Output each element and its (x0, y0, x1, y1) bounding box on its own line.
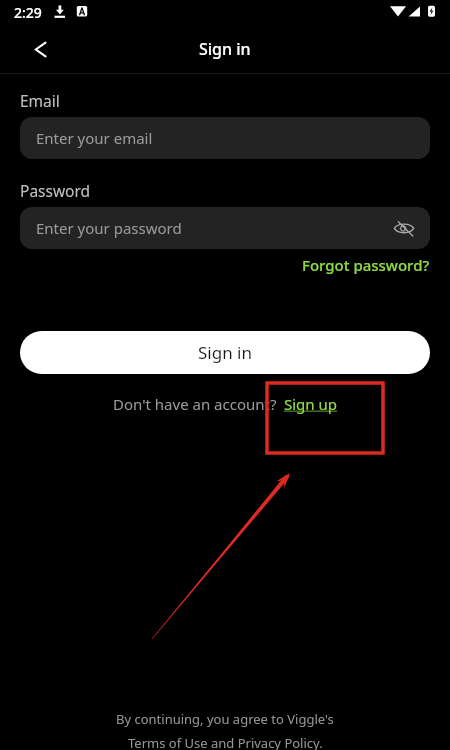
staticText: Email (20, 90, 60, 111)
button[interactable]: Show password (390, 214, 418, 242)
staticText: Enter your email (36, 128, 153, 148)
button[interactable]: Enter your password (20, 207, 430, 249)
staticText: Sign up (284, 394, 337, 414)
staticText: Password (20, 180, 91, 201)
staticText: Terms of Use and Privacy Policy. (128, 734, 323, 750)
button[interactable]: Sign up (284, 394, 337, 414)
staticText: Sign in (198, 341, 252, 364)
staticText: Sign in (199, 38, 251, 60)
button[interactable]: Enter your email (20, 117, 430, 159)
staticText: 2:29 (14, 3, 42, 22)
button[interactable]: Forgot password? (302, 255, 430, 275)
staticText: Forgot password? (302, 255, 430, 275)
staticText: Don't have an account? (113, 394, 277, 414)
staticText: Enter your password (36, 218, 182, 238)
button[interactable]: Back (24, 33, 56, 65)
button[interactable]: Sign in (20, 331, 430, 374)
staticText: By continuing, you agree to Viggle's (116, 710, 334, 728)
